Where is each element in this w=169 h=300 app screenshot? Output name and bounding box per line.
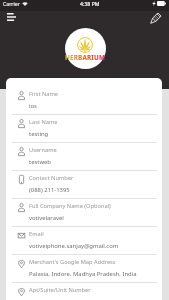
staticText: votiveiphone.sanjay@gmail.com — [29, 242, 161, 250]
button[interactable]: Contact Number — [6, 171, 162, 199]
staticText: Email — [29, 230, 161, 238]
staticText: Apt/Suite/Unit Number — [29, 286, 161, 294]
staticText: votivelaravel — [29, 214, 161, 222]
staticText: Contact Number — [29, 174, 161, 182]
button[interactable]: First Name — [6, 87, 162, 115]
button[interactable]: Apt/Suite/Unit Number — [6, 283, 162, 300]
button[interactable]: Last Name — [6, 115, 162, 143]
staticText: testing — [29, 130, 161, 138]
staticText: 4:38 PM — [80, 0, 100, 7]
staticText: Username — [29, 146, 161, 154]
button[interactable]: Merchant's Google Map Address — [6, 255, 162, 283]
staticText: (088) 211-1395 — [29, 186, 161, 194]
button[interactable]: Open navigation menu — [1, 7, 22, 27]
staticText: testweb — [29, 158, 161, 166]
staticText: Palasia, Indore, Madhya Pradesh, India — [29, 270, 161, 278]
staticText: HERBARIUM — [65, 53, 106, 62]
staticText: Carrier — [3, 0, 20, 7]
staticText: First Name — [29, 90, 161, 98]
button[interactable]: Username — [6, 143, 162, 171]
button[interactable]: Edit profile — [146, 8, 166, 28]
staticText: Full Company Name (Optional) — [29, 202, 161, 210]
staticText: Merchant's Google Map Address — [29, 258, 161, 266]
button[interactable]: Email — [6, 227, 162, 255]
staticText: ios — [29, 102, 161, 110]
button[interactable]: Full Company Name (Optional) — [6, 199, 162, 227]
staticText: Last Name — [29, 118, 161, 126]
